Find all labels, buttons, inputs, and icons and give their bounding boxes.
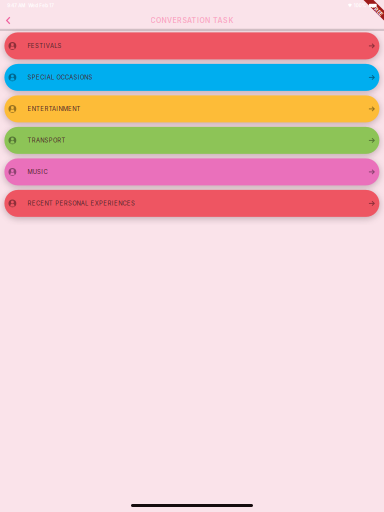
button[interactable]: RECENT PERSONAL EXPERIENCES bbox=[4, 190, 379, 217]
button[interactable]: ENTERTAINMENT bbox=[4, 95, 379, 122]
button[interactable]: SPECIAL OCCASIONS bbox=[4, 64, 379, 91]
staticText: 9:47 AM Wed Feb 17 bbox=[7, 3, 54, 8]
staticText: RECENT PERSONAL EXPERIENCES bbox=[28, 200, 135, 207]
button[interactable]: MUSIC bbox=[4, 158, 379, 185]
staticText: FESTIVALS bbox=[28, 42, 62, 49]
staticText: ENTERTAINMENT bbox=[28, 105, 81, 112]
staticText: MUSIC bbox=[28, 168, 48, 175]
staticText: TRANSPORT bbox=[28, 137, 66, 144]
staticText: FREE bbox=[371, 7, 384, 14]
staticText: CONVERSATION TASK bbox=[150, 16, 233, 25]
button[interactable]: TRANSPORT bbox=[4, 127, 379, 154]
button[interactable]: FESTIVALS bbox=[4, 32, 379, 59]
button[interactable]: Back bbox=[0, 13, 16, 29]
staticText: SPECIAL OCCASIONS bbox=[28, 74, 93, 81]
staticText: 100% bbox=[354, 3, 367, 8]
